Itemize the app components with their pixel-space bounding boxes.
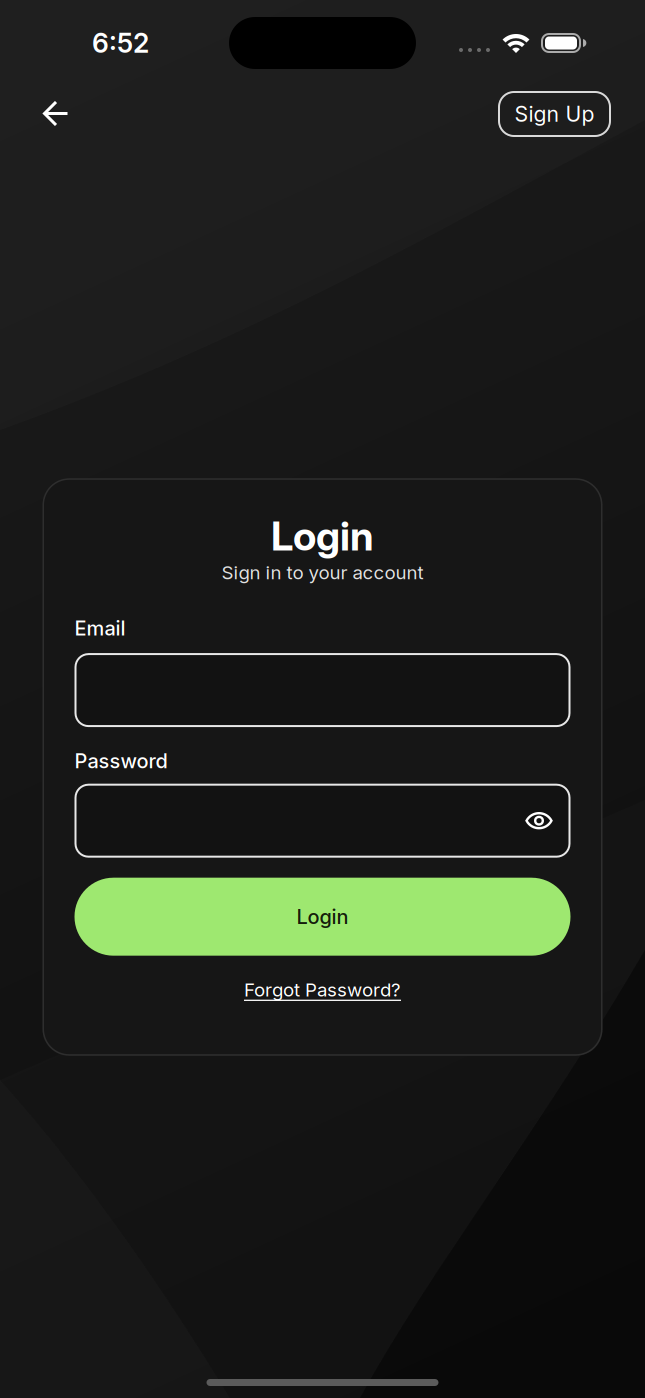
staticText: Password: [74, 749, 167, 773]
button[interactable]: Forgot Password?: [244, 956, 401, 1001]
staticText: Sign Up: [514, 101, 594, 127]
staticText: Sign in to your account: [221, 561, 423, 583]
staticText: Forgot Password?: [244, 979, 401, 1001]
staticText: 6:52: [92, 27, 149, 59]
button[interactable]: Login: [74, 878, 570, 956]
button[interactable]: [0, 101, 70, 127]
staticText: Login: [271, 512, 374, 559]
staticText: Email: [74, 616, 125, 640]
button[interactable]: Sign Up: [498, 91, 645, 137]
staticText: Login: [296, 905, 348, 928]
